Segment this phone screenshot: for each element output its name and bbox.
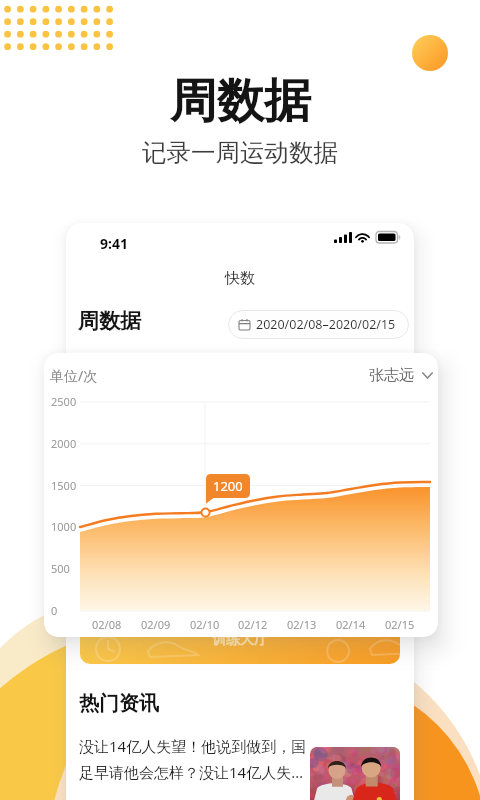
staticText: 1200 <box>213 477 243 495</box>
staticText: 周数据 <box>78 308 141 334</box>
staticText: 快数 <box>225 269 255 288</box>
staticText: 2020/02/08–2020/02/15 <box>256 316 396 333</box>
staticText: 02/15 <box>385 617 415 632</box>
button[interactable]: 张志远 <box>366 363 436 388</box>
button[interactable]: 没让14亿人失望！他说到做到，国 足早请他会怎样？没让14亿人失… <box>79 736 329 782</box>
staticText: 记录一周运动数据 <box>142 137 338 168</box>
button[interactable]: 2020/02/08–2020/02/15 <box>228 310 409 339</box>
staticText: 500 <box>51 561 70 576</box>
staticText: 1000 <box>51 519 77 534</box>
staticText: 02/10 <box>190 617 220 632</box>
staticText: 02/08 <box>92 617 122 632</box>
staticText: 热门资讯 <box>79 691 159 716</box>
staticText: 02/09 <box>141 617 171 632</box>
staticText: 02/13 <box>287 617 317 632</box>
staticText: 2000 <box>51 436 77 451</box>
staticText: 周数据 <box>170 72 311 131</box>
staticText: 1500 <box>51 478 77 493</box>
staticText: 9:41 <box>100 234 128 253</box>
staticText: 单位/次 <box>50 366 98 385</box>
staticText: 0 <box>51 603 58 618</box>
staticText: 张志远 <box>369 366 414 385</box>
staticText: 没让14亿人失望！他说到做到，国 足早请他会怎样？没让14亿人失… <box>79 736 307 782</box>
button[interactable]: 训练大厅 <box>80 627 400 664</box>
staticText: 2500 <box>51 394 77 409</box>
staticText: 02/14 <box>336 617 366 632</box>
staticText: 训练大厅 <box>212 631 268 649</box>
staticText: 02/12 <box>238 617 268 632</box>
